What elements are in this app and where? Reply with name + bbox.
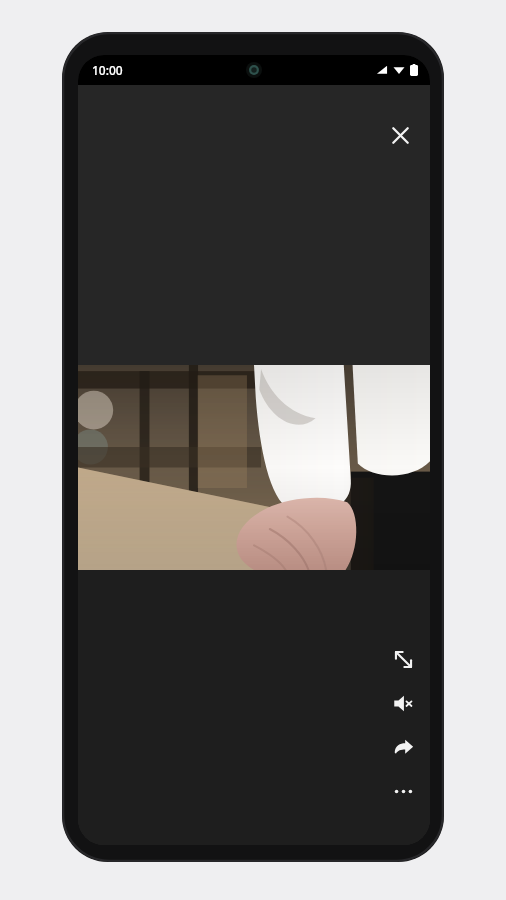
staticText: 10:00 bbox=[92, 62, 123, 78]
button[interactable]: Close bbox=[378, 113, 422, 157]
button[interactable]: More options bbox=[382, 770, 424, 812]
button[interactable]: Unmute bbox=[382, 682, 424, 724]
button[interactable]: Share bbox=[382, 726, 424, 768]
button[interactable]: Video bbox=[78, 365, 430, 570]
button[interactable]: Fullscreen bbox=[382, 638, 424, 680]
